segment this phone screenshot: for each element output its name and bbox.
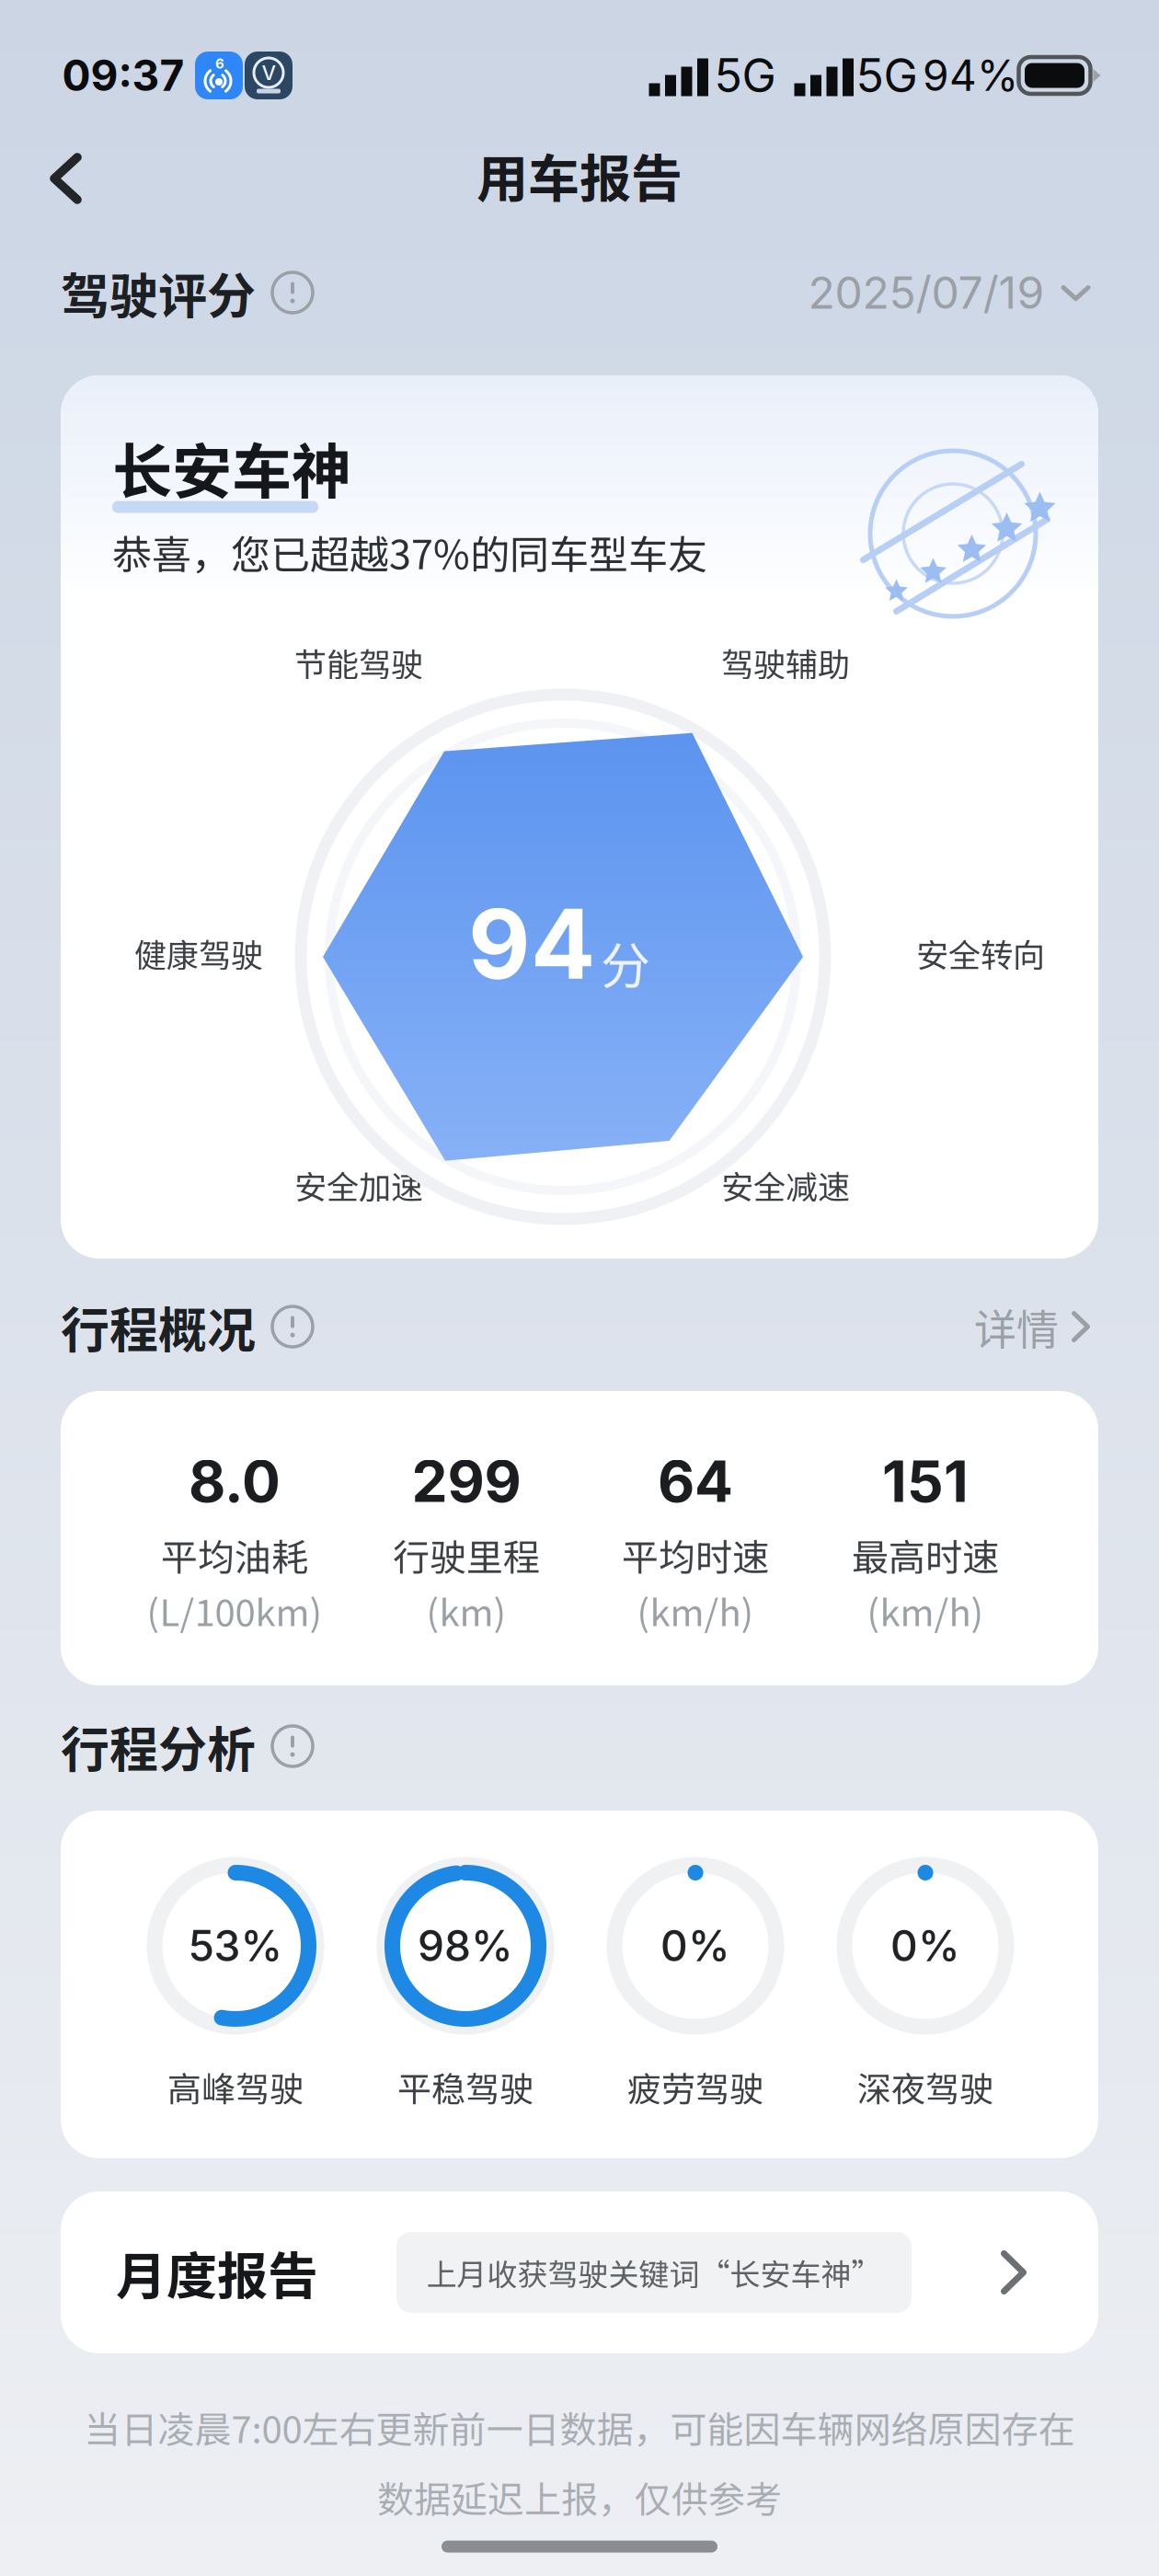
staticText: 94% bbox=[923, 50, 1018, 101]
staticText: 用车报告 bbox=[476, 138, 683, 212]
staticText: 节能驾驶 bbox=[294, 639, 423, 686]
staticText: 94 bbox=[468, 886, 595, 1002]
staticText: (km/h) bbox=[867, 1583, 984, 1637]
staticText: 平均时速 bbox=[622, 1528, 769, 1581]
staticText: 行驶里程 bbox=[393, 1528, 540, 1581]
staticText: 行程分析 bbox=[61, 1711, 256, 1781]
button[interactable]: 详情 bbox=[963, 1281, 1101, 1372]
staticText: 2025/07/19 bbox=[808, 266, 1044, 319]
staticText: 驾驶辅助 bbox=[721, 639, 850, 686]
staticText: 最高时速 bbox=[852, 1528, 999, 1581]
staticText: 53% bbox=[188, 1920, 283, 1971]
staticText: 疲劳驾驶 bbox=[627, 2062, 763, 2111]
staticText: 09:37 bbox=[62, 50, 184, 101]
button[interactable]: Back bbox=[17, 127, 115, 230]
staticText: (km/h) bbox=[637, 1583, 754, 1637]
button[interactable]: 2025/07/19 bbox=[797, 251, 1102, 334]
staticText: 安全转向 bbox=[916, 930, 1045, 976]
staticText: 详情 bbox=[974, 1296, 1059, 1357]
staticText: 平均油耗 bbox=[161, 1528, 308, 1581]
button[interactable]: 月度报告 bbox=[61, 2191, 1098, 2353]
staticText: 5G bbox=[856, 48, 918, 103]
staticText: 数据延迟上报，仅供参考 bbox=[377, 2470, 782, 2523]
staticText: 安全减速 bbox=[721, 1162, 850, 1208]
staticText: 151 bbox=[882, 1447, 969, 1516]
staticText: 6 bbox=[215, 55, 224, 72]
staticText: 8.0 bbox=[189, 1447, 281, 1516]
staticText: 5G bbox=[714, 48, 776, 103]
staticText: 平稳驾驶 bbox=[397, 2062, 534, 2111]
staticText: (L/100km) bbox=[147, 1583, 322, 1637]
staticText: 驾驶评分 bbox=[61, 257, 256, 328]
staticText: 长安车神 bbox=[112, 424, 351, 511]
staticText: 0% bbox=[660, 1920, 730, 1971]
staticText: 上月收获驾驶关键词“长安车神” bbox=[426, 2250, 882, 2294]
staticText: V bbox=[262, 60, 275, 85]
staticText: 月度报告 bbox=[116, 2236, 318, 2309]
staticText: 高峰驾驶 bbox=[167, 2062, 304, 2111]
staticText: 分 bbox=[601, 926, 650, 998]
staticText: 安全加速 bbox=[294, 1162, 423, 1208]
staticText: 健康驾驶 bbox=[134, 930, 263, 976]
staticText: 0% bbox=[890, 1920, 960, 1971]
staticText: 98% bbox=[418, 1920, 513, 1971]
staticText: 深夜驾驶 bbox=[857, 2062, 993, 2111]
staticText: (km) bbox=[426, 1583, 506, 1637]
staticText: 恭喜，您已超越37%的同车型车友 bbox=[112, 523, 707, 581]
staticText: 行程概况 bbox=[61, 1291, 256, 1362]
staticText: 64 bbox=[658, 1447, 733, 1516]
staticText: 当日凌晨7:00左右更新前一日数据，可能因车辆网络原因存在 bbox=[84, 2400, 1075, 2454]
staticText: 299 bbox=[412, 1447, 521, 1516]
